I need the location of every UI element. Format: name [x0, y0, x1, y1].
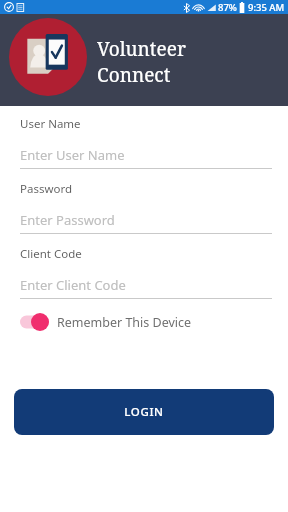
staticText: Remember This Device — [57, 314, 192, 331]
staticText: 87% — [218, 1, 237, 14]
button[interactable]: LOGIN — [14, 389, 274, 435]
staticText: Volunteer — [97, 36, 186, 62]
staticText: Enter Password — [20, 211, 115, 229]
staticText: 9:35 AM — [248, 1, 285, 14]
staticText: Enter User Name — [20, 146, 125, 164]
staticText: Client Code — [20, 246, 82, 262]
button[interactable]: Remember This Device — [0, 309, 288, 335]
staticText: User Name — [20, 116, 81, 132]
staticText: Enter Client Code — [20, 276, 126, 294]
staticText: Connect — [97, 62, 171, 88]
staticText: Password — [20, 181, 73, 197]
other: Volunteer Connect logo — [9, 18, 87, 96]
button[interactable]: User Name — [0, 116, 288, 169]
button[interactable]: Password — [0, 181, 288, 234]
staticText: LOGIN — [124, 404, 164, 420]
button[interactable]: Client Code — [0, 246, 288, 299]
